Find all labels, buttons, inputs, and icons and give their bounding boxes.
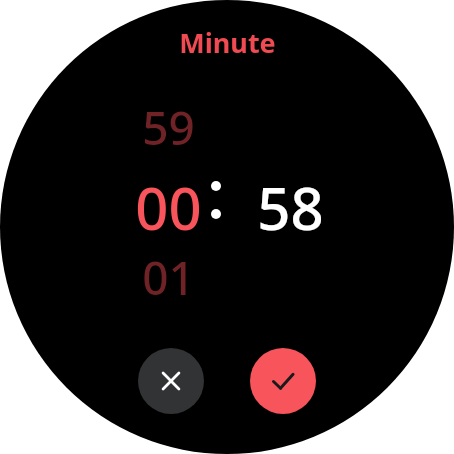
button[interactable]: Minute: [179, 24, 276, 61]
staticText: 58: [257, 168, 324, 232]
button[interactable]: Confirm: [250, 348, 316, 414]
button[interactable]: 00: [112, 168, 224, 232]
button[interactable]: Cancel: [138, 348, 204, 414]
staticText: Minute: [179, 24, 276, 61]
staticText: 00: [135, 168, 202, 232]
staticText: 59: [142, 96, 195, 152]
button[interactable]: 58: [234, 168, 346, 232]
staticText: 01: [142, 246, 195, 302]
